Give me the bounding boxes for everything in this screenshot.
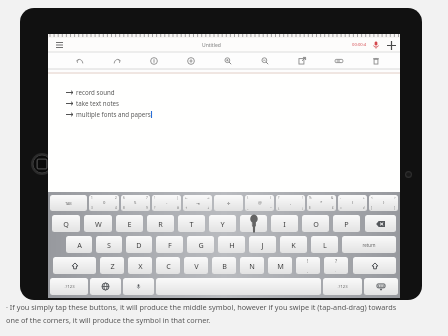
staticText: F (168, 240, 172, 250)
staticText: R (158, 219, 163, 229)
button[interactable]: Record (370, 39, 382, 51)
staticText: 9 (146, 206, 148, 210)
button[interactable]: % (307, 195, 336, 211)
staticText: 3 (91, 206, 93, 210)
button[interactable] (156, 278, 321, 295)
button[interactable]: .?123 (323, 278, 362, 295)
button[interactable]: U (240, 215, 267, 232)
button[interactable]: 1 (89, 195, 119, 211)
staticText: ) (383, 200, 385, 206)
button[interactable]: G (187, 236, 214, 253)
staticText: Untitled (202, 42, 221, 49)
staticText: 2 (115, 196, 117, 200)
button[interactable]: TAB (50, 195, 87, 211)
button[interactable]: I (271, 215, 298, 232)
staticText: + (363, 196, 365, 200)
button[interactable]: \ (245, 195, 274, 211)
staticText: M (277, 261, 284, 271)
staticText: ? (335, 258, 338, 265)
button[interactable]: Zoom in (209, 53, 246, 69)
staticText: O (313, 219, 319, 229)
button[interactable]: L (311, 236, 338, 253)
staticText: , (290, 200, 292, 206)
button[interactable]: - (338, 195, 367, 211)
button[interactable]: Z (100, 257, 124, 274)
button[interactable]: .?123 (50, 278, 88, 295)
staticText: _ (247, 206, 249, 210)
staticText: # (177, 206, 179, 210)
button[interactable]: ← (183, 195, 212, 211)
button[interactable]: Text box (320, 53, 357, 69)
staticText: ¿ (278, 206, 280, 210)
staticText: ~ (270, 206, 272, 210)
button[interactable]: Q (52, 215, 80, 232)
button[interactable]: Delete (357, 53, 394, 69)
staticText: Y (220, 219, 225, 229)
button[interactable]: ? (324, 257, 348, 274)
staticText: | (177, 196, 179, 200)
button[interactable]: 6 (121, 195, 150, 211)
button[interactable]: Redo (98, 53, 135, 69)
staticText: & (331, 196, 334, 200)
staticText: E (127, 219, 132, 229)
button[interactable]: F (156, 236, 183, 253)
button[interactable]: Shift (53, 257, 96, 274)
staticText: , (307, 268, 309, 273)
staticText: ! (154, 196, 155, 200)
button[interactable]: X (128, 257, 152, 274)
staticText: J (261, 240, 264, 250)
button[interactable]: T (178, 215, 205, 232)
button[interactable]: Menu (48, 38, 70, 52)
button[interactable]: Add (382, 38, 400, 52)
button[interactable]: W (84, 215, 112, 232)
button[interactable]: Eraser (172, 53, 209, 69)
button[interactable]: Shift (353, 257, 396, 274)
button[interactable]: H (218, 236, 245, 253)
staticText: D (136, 240, 142, 250)
staticText: ? (278, 196, 280, 200)
button[interactable]: M (268, 257, 292, 274)
staticText: ¡ (302, 206, 303, 210)
button[interactable]: C (156, 257, 180, 274)
button[interactable]: ! (152, 195, 181, 211)
staticText: ⇥ (196, 201, 200, 206)
staticText: → (207, 196, 210, 200)
staticText: 4 (115, 206, 117, 210)
button[interactable]: Share (283, 53, 320, 69)
button[interactable] (365, 215, 396, 232)
staticText: one of the corners, it will produce the … (6, 315, 211, 325)
button[interactable]: ? (276, 195, 305, 211)
button[interactable]: < (369, 195, 398, 211)
button[interactable]: N (240, 257, 264, 274)
button[interactable]: D (126, 236, 152, 253)
button[interactable]: K (280, 236, 307, 253)
button[interactable]: Hide keyboard (364, 278, 398, 295)
staticText: W (95, 219, 102, 229)
staticText: $ (309, 206, 311, 210)
staticText: 5 (134, 200, 137, 206)
staticText: P (344, 219, 349, 229)
button[interactable]: S (96, 236, 122, 253)
button[interactable]: A (66, 236, 92, 253)
button[interactable]: B (212, 257, 236, 274)
button[interactable]: Y (209, 215, 236, 232)
button[interactable]: Dictate (123, 278, 154, 295)
button[interactable]: ✛ (214, 195, 243, 211)
button[interactable]: Zoom out (246, 53, 283, 69)
button[interactable]: Language (90, 278, 121, 295)
button[interactable]: ! (296, 257, 320, 274)
button[interactable]: return (342, 236, 396, 253)
staticText: record sound (76, 88, 115, 96)
staticText: A (77, 240, 82, 250)
button[interactable]: J (249, 236, 276, 253)
button[interactable]: V (184, 257, 208, 274)
staticText: - (166, 200, 168, 206)
button[interactable]: R (147, 215, 174, 232)
button[interactable]: Undo (62, 53, 98, 69)
button[interactable]: E (116, 215, 143, 232)
staticText: N (249, 261, 255, 271)
button[interactable]: P (333, 215, 360, 232)
button[interactable]: O (302, 215, 329, 232)
staticText: ✛ (227, 201, 231, 206)
button[interactable]: Pen (135, 53, 172, 69)
